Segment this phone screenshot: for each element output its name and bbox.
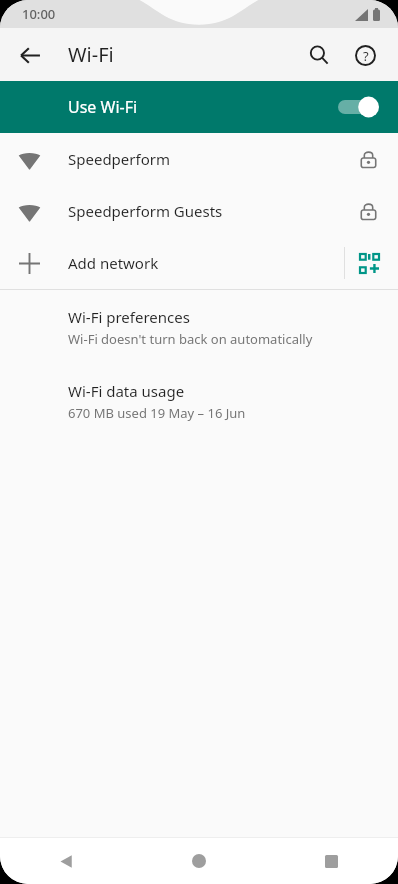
- button[interactable]: Back: [8, 33, 52, 77]
- button[interactable]: Speedperform Guests: [0, 185, 398, 237]
- staticText: Wi-Fi preferences: [68, 307, 190, 327]
- staticText: Wi-Fi: [68, 41, 114, 68]
- button[interactable]: Help: [342, 32, 388, 78]
- staticText: 10:00: [22, 5, 56, 23]
- staticText: Wi-Fi doesn't turn back on automatically: [68, 330, 313, 348]
- staticText: Speedperform Guests: [68, 201, 223, 221]
- button[interactable]: Speedperform: [0, 133, 398, 185]
- button[interactable]: Wi-Fi data usage: [0, 364, 398, 438]
- staticText: ?: [363, 47, 369, 65]
- staticText: Use Wi-Fi: [68, 96, 138, 118]
- button[interactable]: Use Wi-Fi: [0, 81, 398, 133]
- button[interactable]: Scan QR code: [354, 248, 384, 278]
- staticText: Wi-Fi data usage: [68, 381, 185, 401]
- staticText: 670 MB used 19 May – 16 Jun: [68, 404, 246, 422]
- button[interactable]: Add network: [0, 237, 398, 289]
- button[interactable]: Search: [296, 32, 342, 78]
- button[interactable]: Wi-Fi preferences: [0, 290, 398, 364]
- staticText: Speedperform: [68, 149, 170, 169]
- button[interactable]: Home: [132, 838, 265, 884]
- button[interactable]: Recent apps: [265, 838, 398, 884]
- button[interactable]: Back: [0, 838, 132, 884]
- staticText: Add network: [68, 253, 159, 273]
